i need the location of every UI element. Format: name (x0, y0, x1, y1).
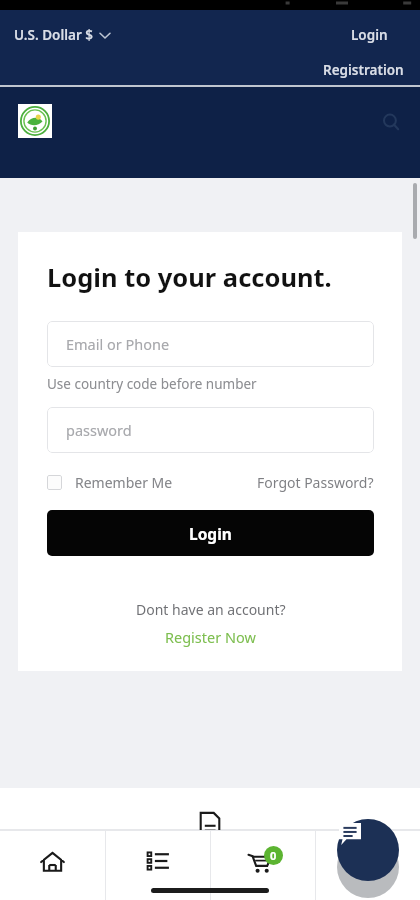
staticText: U.S. Dollar $ (14, 26, 94, 44)
button[interactable]: Cart (211, 830, 315, 900)
staticText: Forgot Password? (257, 473, 374, 492)
staticText: 0 (270, 848, 277, 863)
staticText: Dont have an account? (136, 600, 286, 619)
button[interactable]: Registration (319, 58, 408, 82)
button[interactable]: Login (47, 510, 374, 556)
button[interactable]: Search (376, 107, 406, 137)
staticText: Registration (323, 61, 404, 79)
button[interactable]: Forgot Password? (257, 470, 374, 495)
staticText: Login (351, 26, 388, 44)
button[interactable]: Login (347, 23, 392, 47)
staticText: Register Now (165, 627, 256, 647)
button[interactable]: U.S. Dollar $ (12, 23, 112, 47)
staticText: Login to your account. (47, 260, 332, 295)
staticText: password (66, 420, 132, 440)
button[interactable]: Remember Me (47, 470, 173, 495)
button[interactable]: Account (316, 830, 420, 900)
button[interactable]: Chat support (337, 819, 399, 881)
button[interactable]: Email or Phone (47, 321, 374, 367)
button[interactable]: Home (0, 830, 105, 900)
button[interactable]: password (47, 407, 374, 453)
button[interactable]: Categories (106, 830, 210, 900)
staticText: Login (189, 523, 232, 544)
staticText: Use country code before number (47, 375, 257, 393)
staticText: Email or Phone (66, 334, 170, 354)
button[interactable]: Home logo (18, 104, 52, 138)
staticText: Remember Me (75, 473, 173, 492)
button[interactable]: Register Now (161, 625, 260, 649)
